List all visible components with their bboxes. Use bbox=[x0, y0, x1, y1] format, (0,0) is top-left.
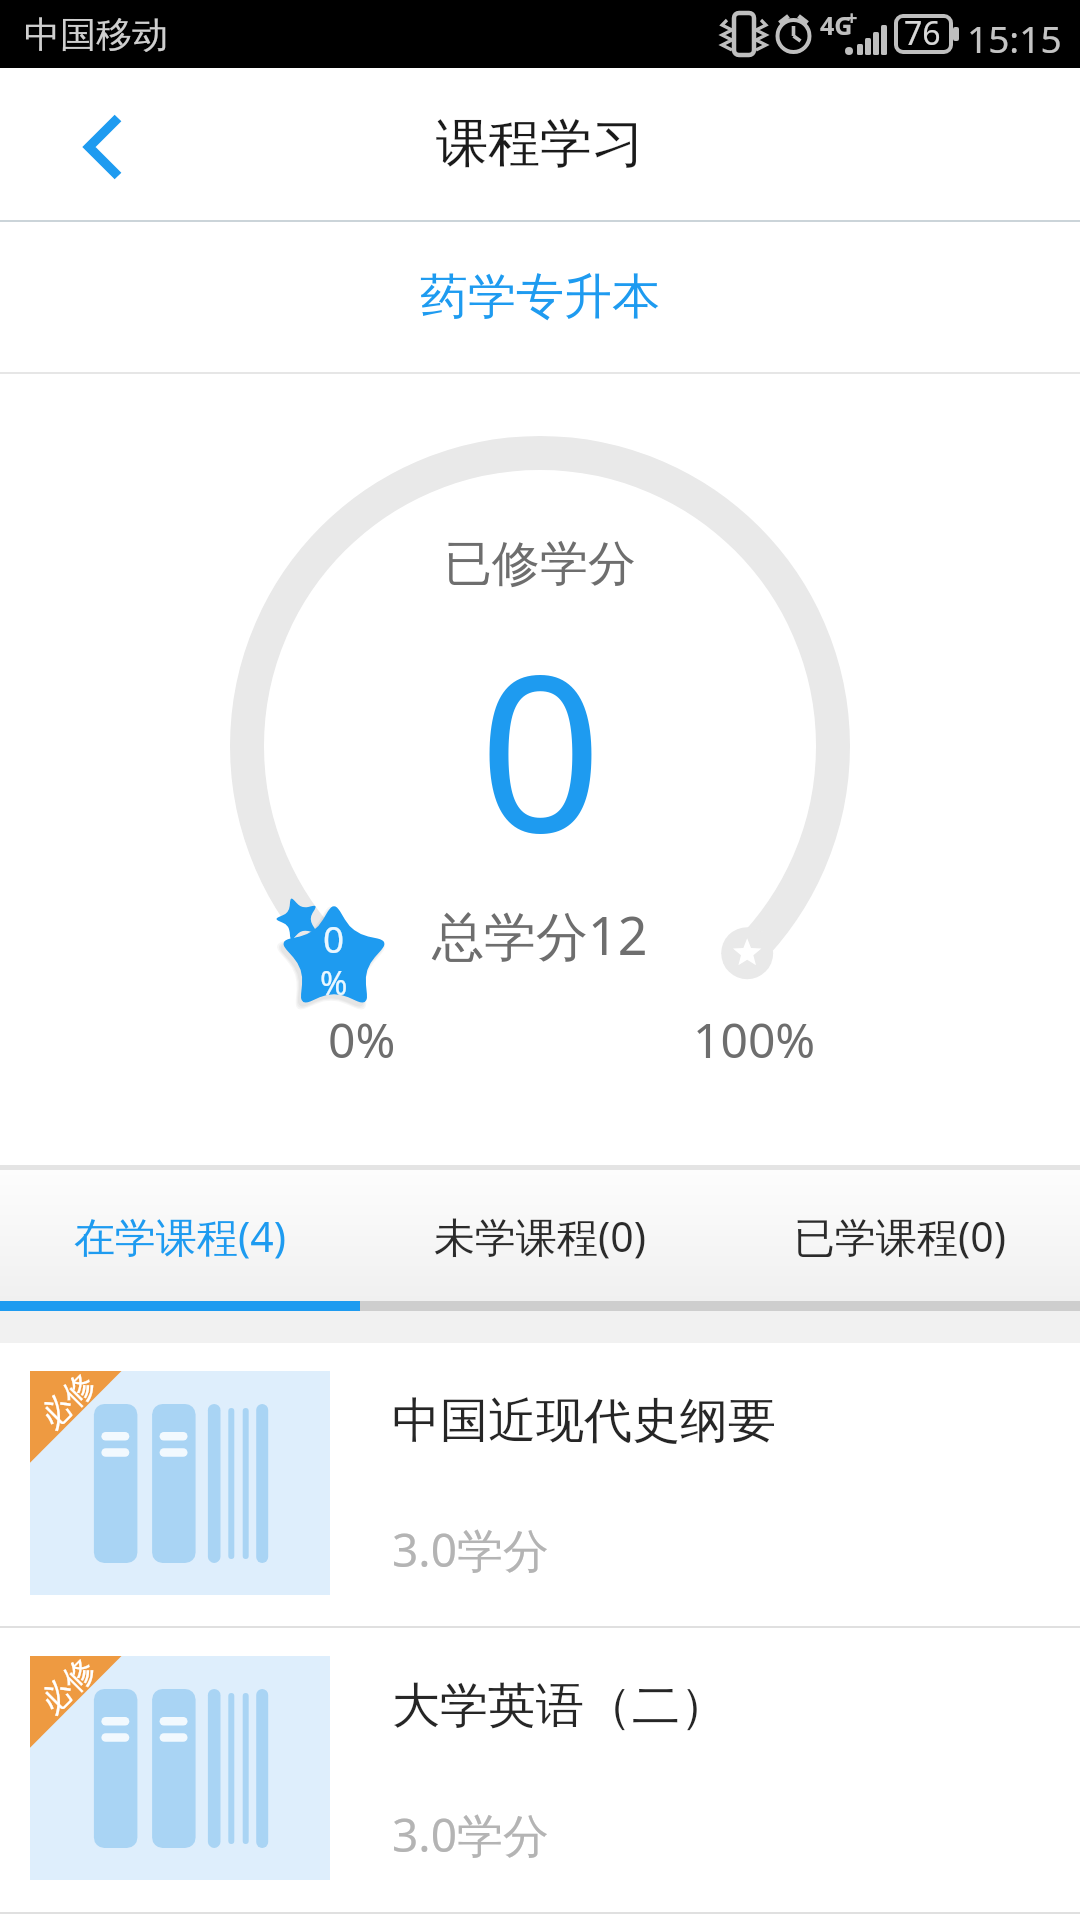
staticText: 4G bbox=[820, 8, 853, 42]
staticText: 药学专升本 bbox=[420, 267, 660, 327]
staticText: 必修 bbox=[32, 1650, 104, 1721]
staticText: 15:15 bbox=[967, 13, 1062, 63]
staticText: % bbox=[320, 960, 348, 1005]
button[interactable]: Back bbox=[0, 68, 200, 220]
staticText: 已学课程(0) bbox=[794, 1208, 1007, 1264]
staticText: 100% bbox=[693, 1007, 816, 1072]
button[interactable]: 药学专升本 bbox=[0, 222, 1080, 372]
staticText: 0 bbox=[323, 913, 345, 963]
staticText: 0 bbox=[479, 602, 602, 895]
staticText: 3.0学分 bbox=[392, 1803, 549, 1866]
staticText: 中国移动 bbox=[24, 12, 168, 57]
staticText: 已修学分 bbox=[444, 534, 636, 594]
staticText: + bbox=[846, 4, 858, 31]
button[interactable]: 必修 bbox=[0, 1343, 1080, 1626]
button[interactable]: 已学课程(0) bbox=[720, 1170, 1080, 1301]
staticText: 0% bbox=[328, 1007, 396, 1072]
staticText: 课程学习 bbox=[436, 111, 644, 177]
staticText: 总学分12 bbox=[432, 899, 648, 970]
button[interactable]: 在学课程(4) bbox=[0, 1170, 360, 1301]
staticText: 76 bbox=[904, 11, 941, 55]
button[interactable]: 未学课程(0) bbox=[360, 1170, 720, 1301]
staticText: 必修 bbox=[32, 1365, 104, 1436]
button[interactable]: 必修 bbox=[0, 1628, 1080, 1911]
staticText: 在学课程(4) bbox=[74, 1208, 287, 1264]
staticText: 大学英语（二） bbox=[392, 1676, 728, 1736]
staticText: 未学课程(0) bbox=[434, 1208, 647, 1264]
staticText: 中国近现代史纲要 bbox=[392, 1391, 776, 1451]
staticText: 3.0学分 bbox=[392, 1518, 549, 1581]
